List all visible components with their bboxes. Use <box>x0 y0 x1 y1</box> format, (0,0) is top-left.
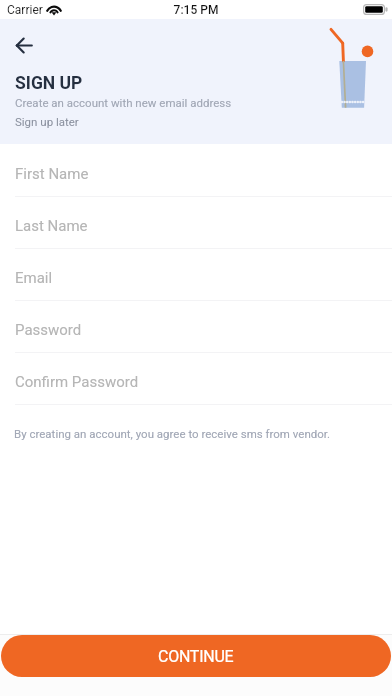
button[interactable]: Confirm Password <box>0 353 392 405</box>
button[interactable]: CONTINUE <box>1 635 391 677</box>
staticText: Carrier <box>7 3 43 17</box>
staticText: By creating an account, you agree to rec… <box>14 427 331 440</box>
staticText: First Name <box>15 165 89 183</box>
staticText: CONTINUE <box>158 647 234 666</box>
staticText: Sign up later <box>15 115 79 128</box>
staticText: 7:15 PM <box>0 3 392 17</box>
button[interactable]: Email <box>0 249 392 301</box>
staticText: Confirm Password <box>15 373 139 391</box>
button[interactable]: Last Name <box>0 197 392 249</box>
button[interactable]: First Name <box>0 145 392 197</box>
staticText: SIGN UP <box>15 73 83 94</box>
button[interactable]: Password <box>0 301 392 353</box>
staticText: Email <box>15 269 53 287</box>
staticText: Password <box>15 321 82 339</box>
staticText: Last Name <box>15 217 88 235</box>
button[interactable]: Back <box>8 29 40 61</box>
button[interactable]: Sign up later <box>15 115 79 128</box>
staticText: Create an account with new email address <box>15 96 232 109</box>
